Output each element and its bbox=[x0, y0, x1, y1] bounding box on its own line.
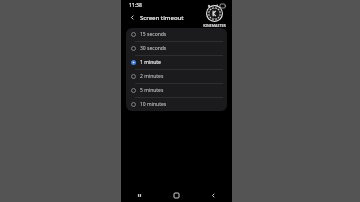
staticText: 11:38 bbox=[129, 2, 142, 9]
staticText: 10 minutes bbox=[140, 101, 167, 108]
button[interactable]: 15 seconds bbox=[126, 28, 227, 41]
button[interactable]: 10 minutes bbox=[126, 98, 227, 111]
button[interactable]: 2 minutes bbox=[126, 70, 227, 83]
button[interactable]: Home bbox=[158, 188, 195, 202]
staticText: 15 seconds bbox=[140, 31, 167, 38]
staticText: 1 minute bbox=[140, 59, 161, 66]
button[interactable]: 30 seconds bbox=[126, 42, 227, 55]
staticText: 30 seconds bbox=[140, 45, 167, 52]
staticText: 2 minutes bbox=[140, 73, 164, 80]
button[interactable]: Back bbox=[127, 12, 138, 23]
button[interactable]: Recents bbox=[121, 188, 158, 202]
button[interactable]: 1 minute bbox=[126, 56, 227, 69]
staticText: Screen timeout bbox=[140, 14, 184, 22]
button[interactable]: 5 minutes bbox=[126, 84, 227, 97]
staticText: KINEMASTER bbox=[203, 23, 226, 28]
staticText: 5 minutes bbox=[140, 87, 164, 94]
button[interactable]: Back bbox=[195, 188, 232, 202]
